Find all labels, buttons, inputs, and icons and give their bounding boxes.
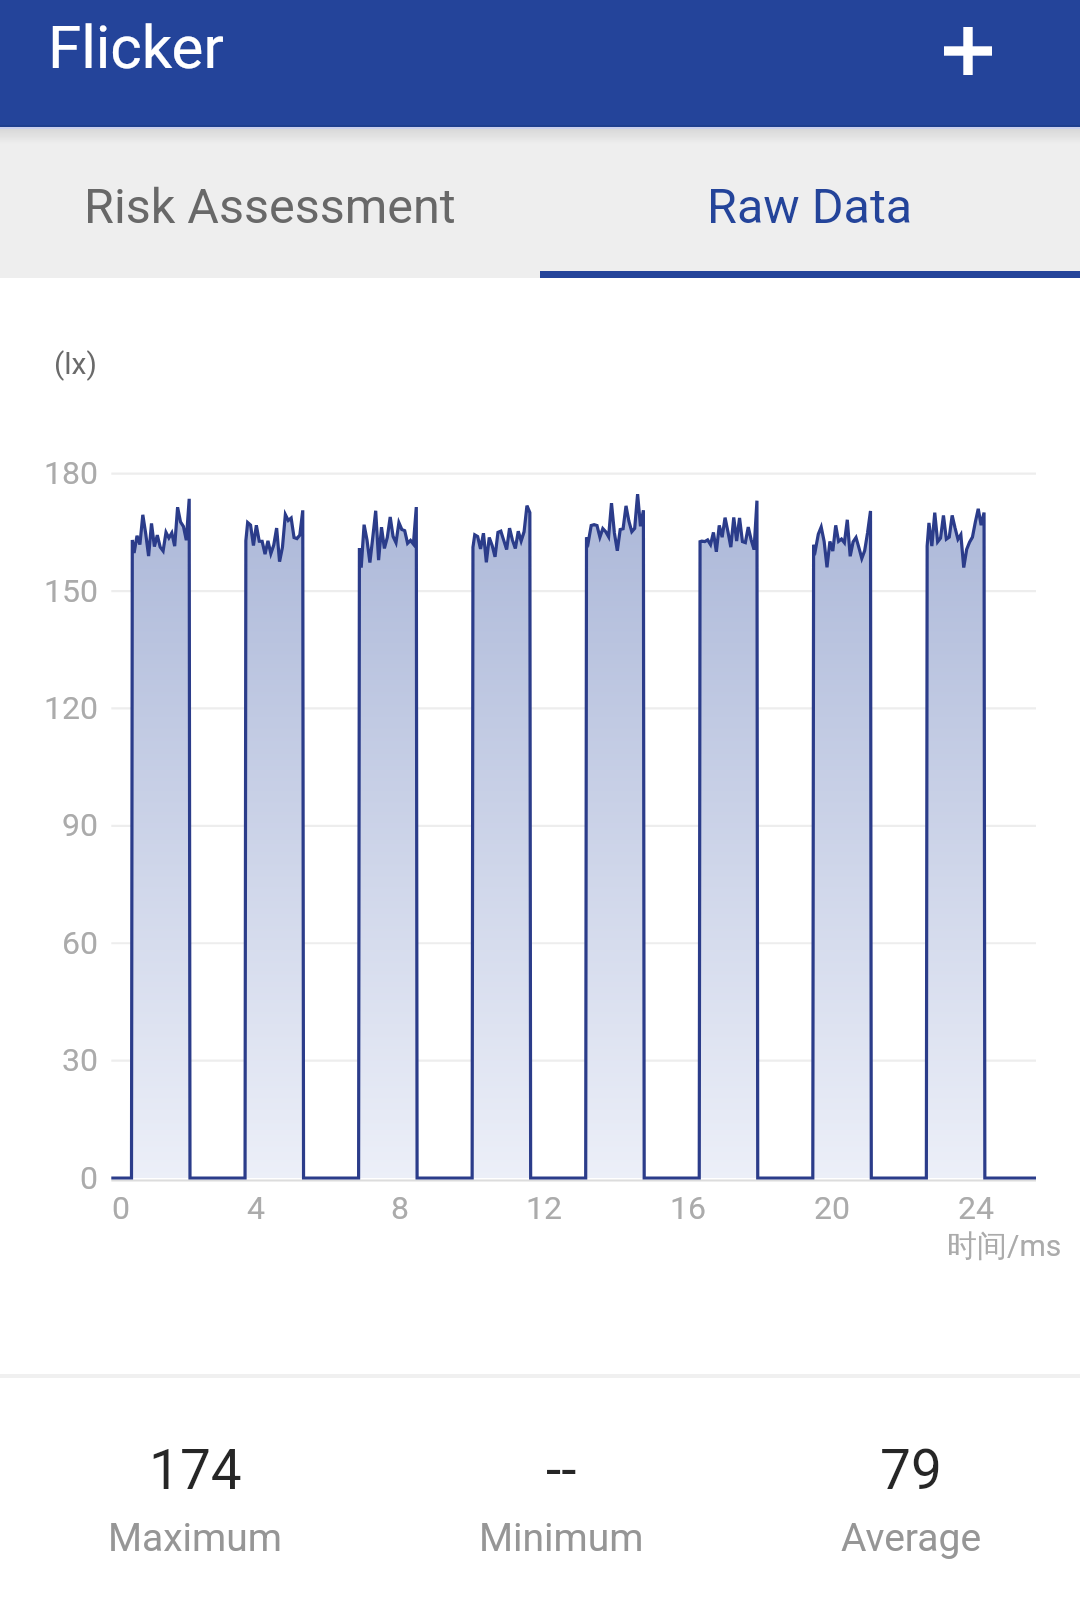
button[interactable]: Raw Data [540,127,1080,278]
staticText: 30 [0,1041,98,1079]
staticText: 180 [0,454,98,492]
staticText: Raw Data [707,178,913,235]
staticText: 4 [206,1189,306,1227]
staticText: 0 [112,1189,130,1227]
staticText: 时间/ms [947,1227,1062,1265]
button[interactable]: Add [939,22,997,80]
staticText: (lx) [54,346,97,381]
staticText: 8 [350,1189,450,1227]
staticText: Average [841,1515,982,1561]
staticText: 120 [0,689,98,727]
staticText: 12 [494,1189,594,1227]
staticText: 90 [0,806,98,844]
staticText: 0 [0,1159,98,1197]
button[interactable]: -- [391,1376,731,1600]
staticText: 174 [149,1438,242,1502]
button[interactable]: 174 [25,1376,365,1600]
staticText: 20 [782,1189,882,1227]
staticText: -- [546,1438,577,1502]
staticText: 16 [638,1189,738,1227]
staticText: Maximum [108,1515,282,1561]
staticText: Risk Assessment [84,178,456,235]
staticText: 60 [0,924,98,962]
button[interactable]: Risk Assessment [0,127,540,278]
staticText: 79 [880,1438,942,1502]
staticText: Minimum [479,1515,644,1561]
staticText: 24 [926,1189,1026,1227]
staticText: Flicker [48,12,224,82]
button[interactable]: 79 [741,1376,1080,1600]
staticText: 150 [0,572,98,610]
